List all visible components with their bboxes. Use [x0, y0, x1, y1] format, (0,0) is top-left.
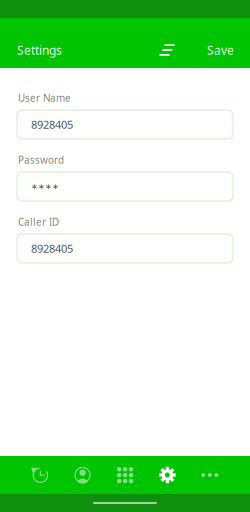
button[interactable]: Contacts [61, 456, 104, 494]
staticText: 8928405 [31, 241, 73, 256]
button[interactable]: Sort [151, 33, 183, 67]
button[interactable]: Recents [19, 456, 61, 494]
staticText: 8928405 [31, 117, 73, 132]
staticText: Caller ID [18, 215, 59, 229]
staticText: Password [18, 153, 64, 167]
staticText: User Name [18, 91, 71, 105]
button[interactable]: Save [207, 33, 234, 67]
button[interactable]: Settings [146, 456, 189, 494]
button[interactable]: 8928405 [17, 234, 233, 263]
staticText: Save [207, 42, 234, 58]
staticText: Settings [17, 42, 62, 58]
button[interactable]: More [189, 456, 231, 494]
button[interactable]: ∗∗∗∗ [17, 172, 233, 201]
button[interactable]: 8928405 [17, 110, 233, 139]
button[interactable]: Keypad [104, 456, 146, 494]
staticText: ∗∗∗∗ [31, 182, 59, 191]
